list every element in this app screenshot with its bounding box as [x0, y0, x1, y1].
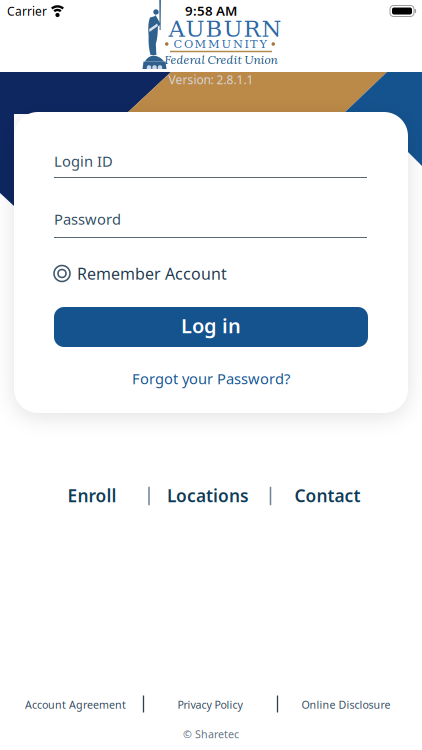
staticText: © Sharetec [183, 727, 239, 741]
staticText: Password [54, 209, 121, 229]
button[interactable]: Enroll [67, 484, 116, 507]
staticText: Version: 2.8.1.1 [168, 71, 253, 87]
staticText: Remember Account [77, 263, 227, 284]
staticText: COMMUNITY [173, 37, 266, 51]
button[interactable]: Locations [167, 484, 249, 507]
staticText: AUBURN [168, 16, 281, 42]
staticText: 9:58 AM [185, 2, 237, 19]
staticText: Contact [294, 484, 360, 507]
staticText: Forgot your Password? [132, 369, 290, 388]
button[interactable]: Forgot your Password? [132, 369, 290, 388]
staticText: Enroll [67, 484, 116, 507]
staticText: Login ID [54, 151, 113, 171]
button[interactable]: Contact [294, 484, 360, 507]
button[interactable]: Online Disclosure [301, 697, 390, 712]
staticText: Locations [167, 484, 249, 507]
button[interactable]: Remember Account [54, 263, 367, 284]
staticText: Log in [181, 312, 241, 339]
staticText: Account Agreement [25, 697, 126, 712]
button[interactable]: Log in [54, 307, 368, 347]
button[interactable]: Privacy Policy [177, 697, 242, 712]
staticText: Federal Credit Union [164, 52, 277, 67]
button[interactable]: Account Agreement [25, 697, 126, 712]
staticText: Online Disclosure [301, 697, 390, 712]
staticText: Carrier [7, 3, 47, 19]
staticText: Privacy Policy [177, 697, 242, 712]
